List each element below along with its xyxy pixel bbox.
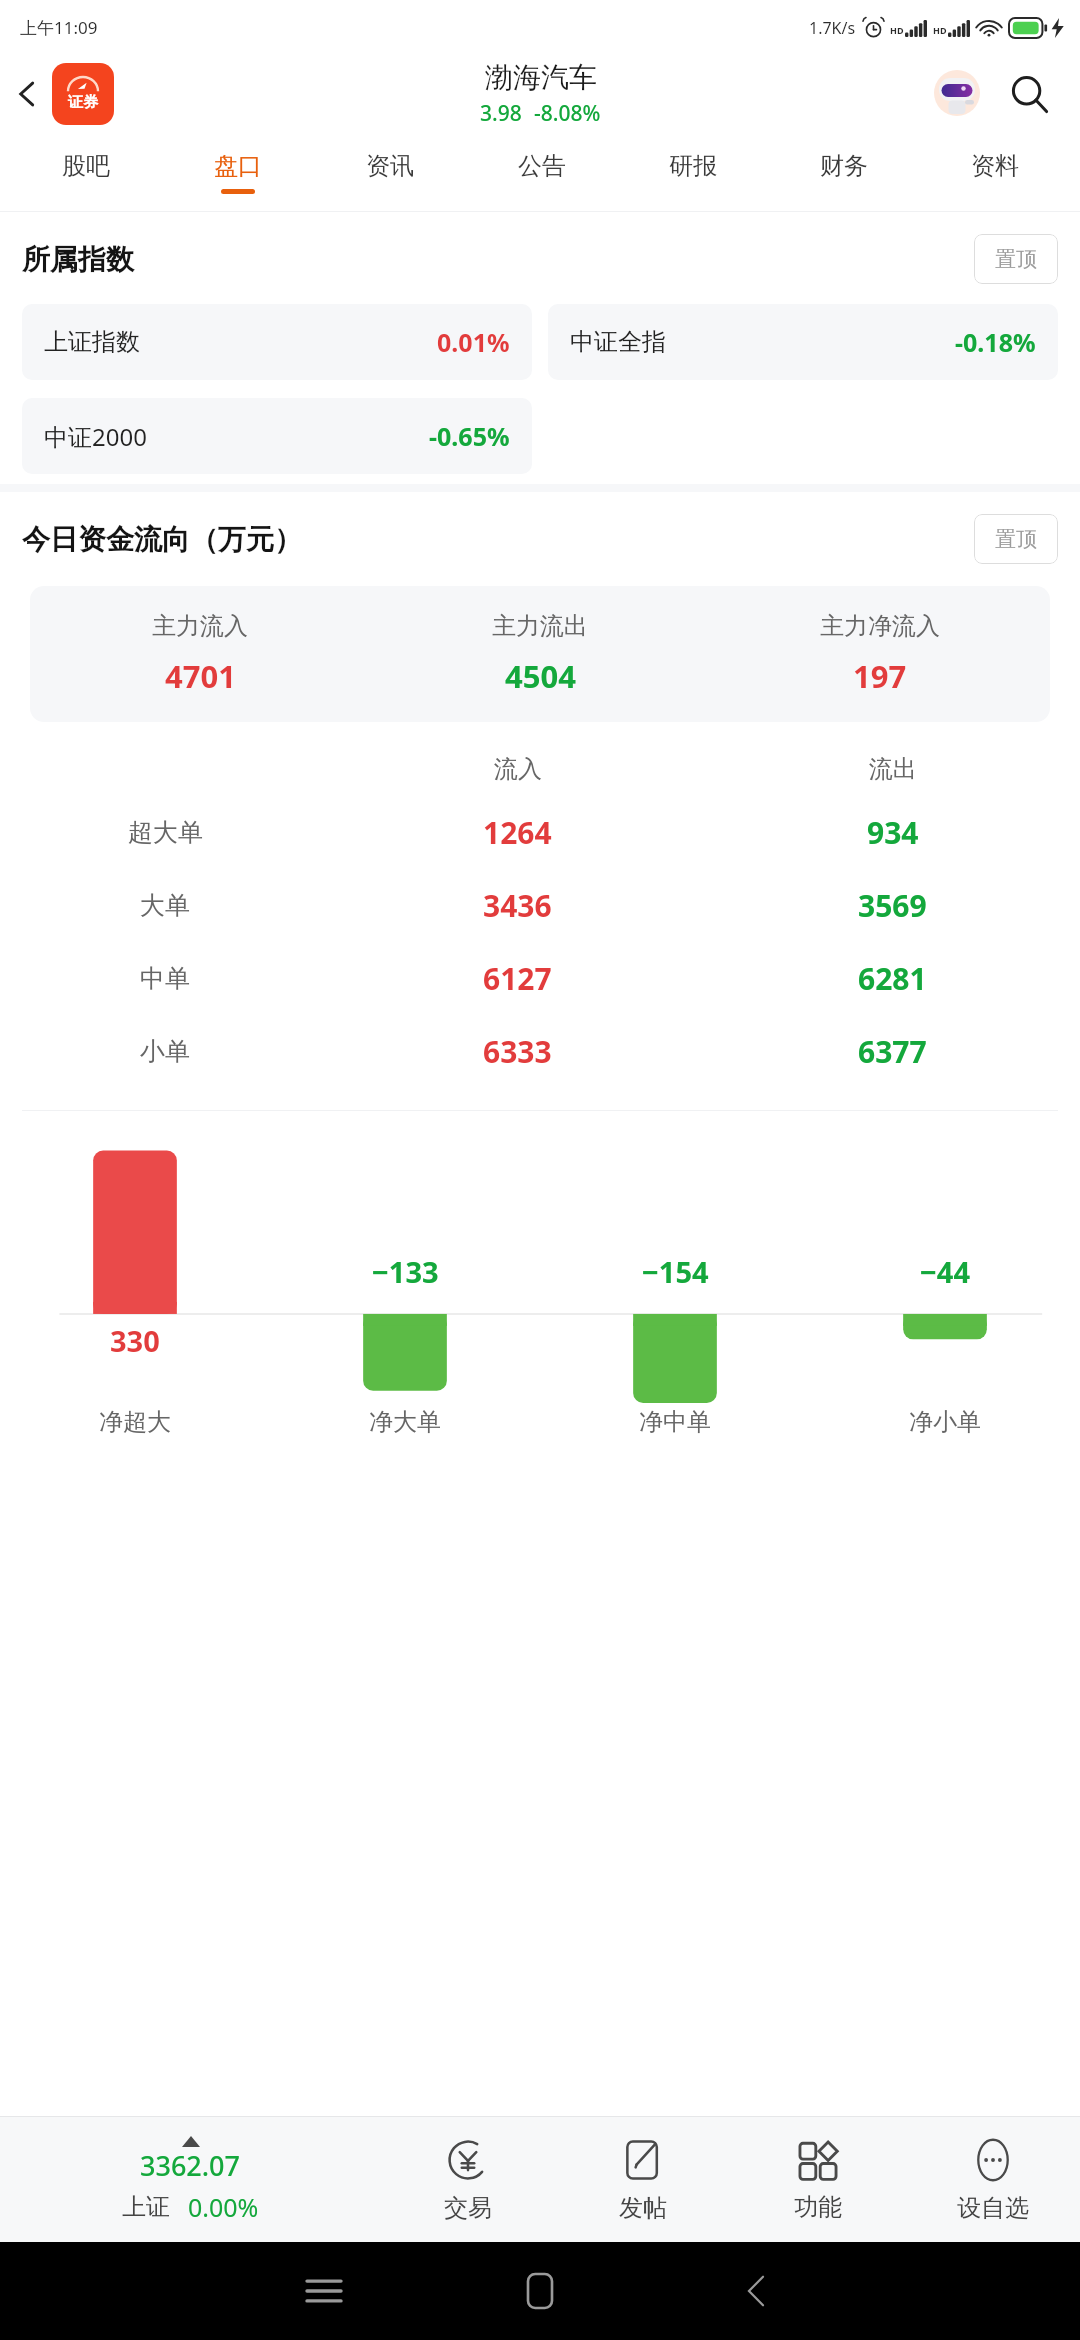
staticText: 中证全指 <box>570 327 666 357</box>
staticText: 盘口 <box>214 151 262 181</box>
staticText: -8.08% <box>534 99 601 128</box>
button[interactable]: 流入 <box>0 752 1080 786</box>
button[interactable]: Recent apps <box>216 2242 432 2340</box>
staticText: 3362.07 <box>140 2147 241 2184</box>
staticText: 净超大 <box>99 1407 171 1437</box>
staticText: 中证2000 <box>44 420 147 453</box>
staticText: 流入 <box>494 754 542 784</box>
staticText: 0.01% <box>437 325 510 359</box>
button[interactable]: Home <box>432 2242 648 2340</box>
button[interactable]: 3362.07 <box>0 2117 380 2242</box>
staticText: 主力净流入 <box>820 611 940 641</box>
button[interactable]: Search <box>998 63 1060 125</box>
staticText: 股吧 <box>62 151 110 181</box>
staticText: 0.00% <box>188 2190 259 2224</box>
staticText: 置顶 <box>995 246 1037 272</box>
staticText: -0.65% <box>429 419 510 453</box>
staticText: 净大单 <box>369 1407 441 1437</box>
staticText: 发帖 <box>619 2193 667 2223</box>
staticText: 证券 <box>68 93 98 112</box>
staticText: 6281 <box>858 958 927 999</box>
staticText: 6377 <box>858 1031 927 1072</box>
staticText: HD <box>890 24 904 36</box>
staticText: 4701 <box>165 655 236 697</box>
button[interactable]: Back <box>648 2242 864 2340</box>
staticText: 主力流入 <box>152 611 248 641</box>
staticText: 功能 <box>794 2192 842 2222</box>
button[interactable]: 研报 <box>617 133 768 211</box>
staticText: 所属指数 <box>22 242 134 277</box>
staticText: 330 <box>110 1321 160 1360</box>
button[interactable]: 资料 <box>919 133 1070 211</box>
staticText: 3.98 <box>480 99 522 128</box>
button[interactable]: App logo <box>52 63 114 125</box>
staticText: 资料 <box>971 151 1019 181</box>
button[interactable]: 资讯 <box>314 133 466 211</box>
staticText: 财务 <box>820 151 868 181</box>
button[interactable]: 发帖 <box>555 2117 730 2242</box>
staticText: 净小单 <box>909 1407 981 1437</box>
staticText: 4504 <box>505 655 576 697</box>
button[interactable]: 中单 <box>0 958 1080 999</box>
staticText: −44 <box>920 1252 971 1291</box>
staticText: 净中单 <box>639 1407 711 1437</box>
staticText: 流出 <box>869 754 917 784</box>
button[interactable]: 小单 <box>0 1031 1080 1072</box>
button[interactable]: 功能 <box>730 2117 905 2242</box>
staticText: -0.18% <box>955 325 1036 359</box>
button[interactable]: Assistant <box>930 67 984 121</box>
staticText: 6333 <box>483 1031 552 1072</box>
staticText: 资讯 <box>366 151 414 181</box>
staticText: 公告 <box>518 151 566 181</box>
staticText: 今日资金流向（万元） <box>22 522 302 557</box>
staticText: 上午11:09 <box>20 16 98 39</box>
staticText: −133 <box>372 1252 439 1291</box>
staticText: 中单 <box>140 963 190 994</box>
staticText: 大单 <box>140 890 190 921</box>
button[interactable]: Back <box>0 66 56 122</box>
staticText: 934 <box>867 812 919 853</box>
staticText: 研报 <box>669 151 717 181</box>
staticText: 上证 <box>122 2192 170 2222</box>
staticText: 1.7K/s <box>809 17 856 39</box>
staticText: 超大单 <box>128 817 203 848</box>
staticText: 主力流出 <box>492 611 588 641</box>
button[interactable]: 超大单 <box>0 812 1080 853</box>
staticText: 设自选 <box>957 2193 1029 2223</box>
button[interactable]: 财务 <box>768 133 919 211</box>
staticText: 交易 <box>444 2193 492 2223</box>
staticText: 3436 <box>483 885 552 926</box>
staticText: −154 <box>642 1252 709 1291</box>
button[interactable]: 置顶 <box>974 514 1058 564</box>
button[interactable]: 交易 <box>380 2117 555 2242</box>
button[interactable]: 盘口 <box>162 133 314 211</box>
button[interactable]: 公告 <box>466 133 617 211</box>
staticText: 渤海汽车 <box>485 60 597 95</box>
staticText: 6127 <box>483 958 552 999</box>
staticText: 1264 <box>483 812 552 853</box>
button[interactable]: 设自选 <box>905 2117 1080 2242</box>
button[interactable]: 大单 <box>0 885 1080 926</box>
staticText: 小单 <box>140 1036 190 1067</box>
staticText: 置顶 <box>995 526 1037 552</box>
button[interactable]: 股吧 <box>10 133 162 211</box>
button[interactable]: 上证指数 <box>22 304 532 380</box>
staticText: 3569 <box>858 885 927 926</box>
staticText: 上证指数 <box>44 327 140 357</box>
button[interactable]: 置顶 <box>974 234 1058 284</box>
button[interactable]: 主力流入 <box>30 586 1050 722</box>
staticText: HD <box>933 24 947 36</box>
button[interactable]: 中证全指 <box>548 304 1058 380</box>
button[interactable]: 中证2000 <box>22 398 532 474</box>
staticText: 197 <box>853 655 907 697</box>
